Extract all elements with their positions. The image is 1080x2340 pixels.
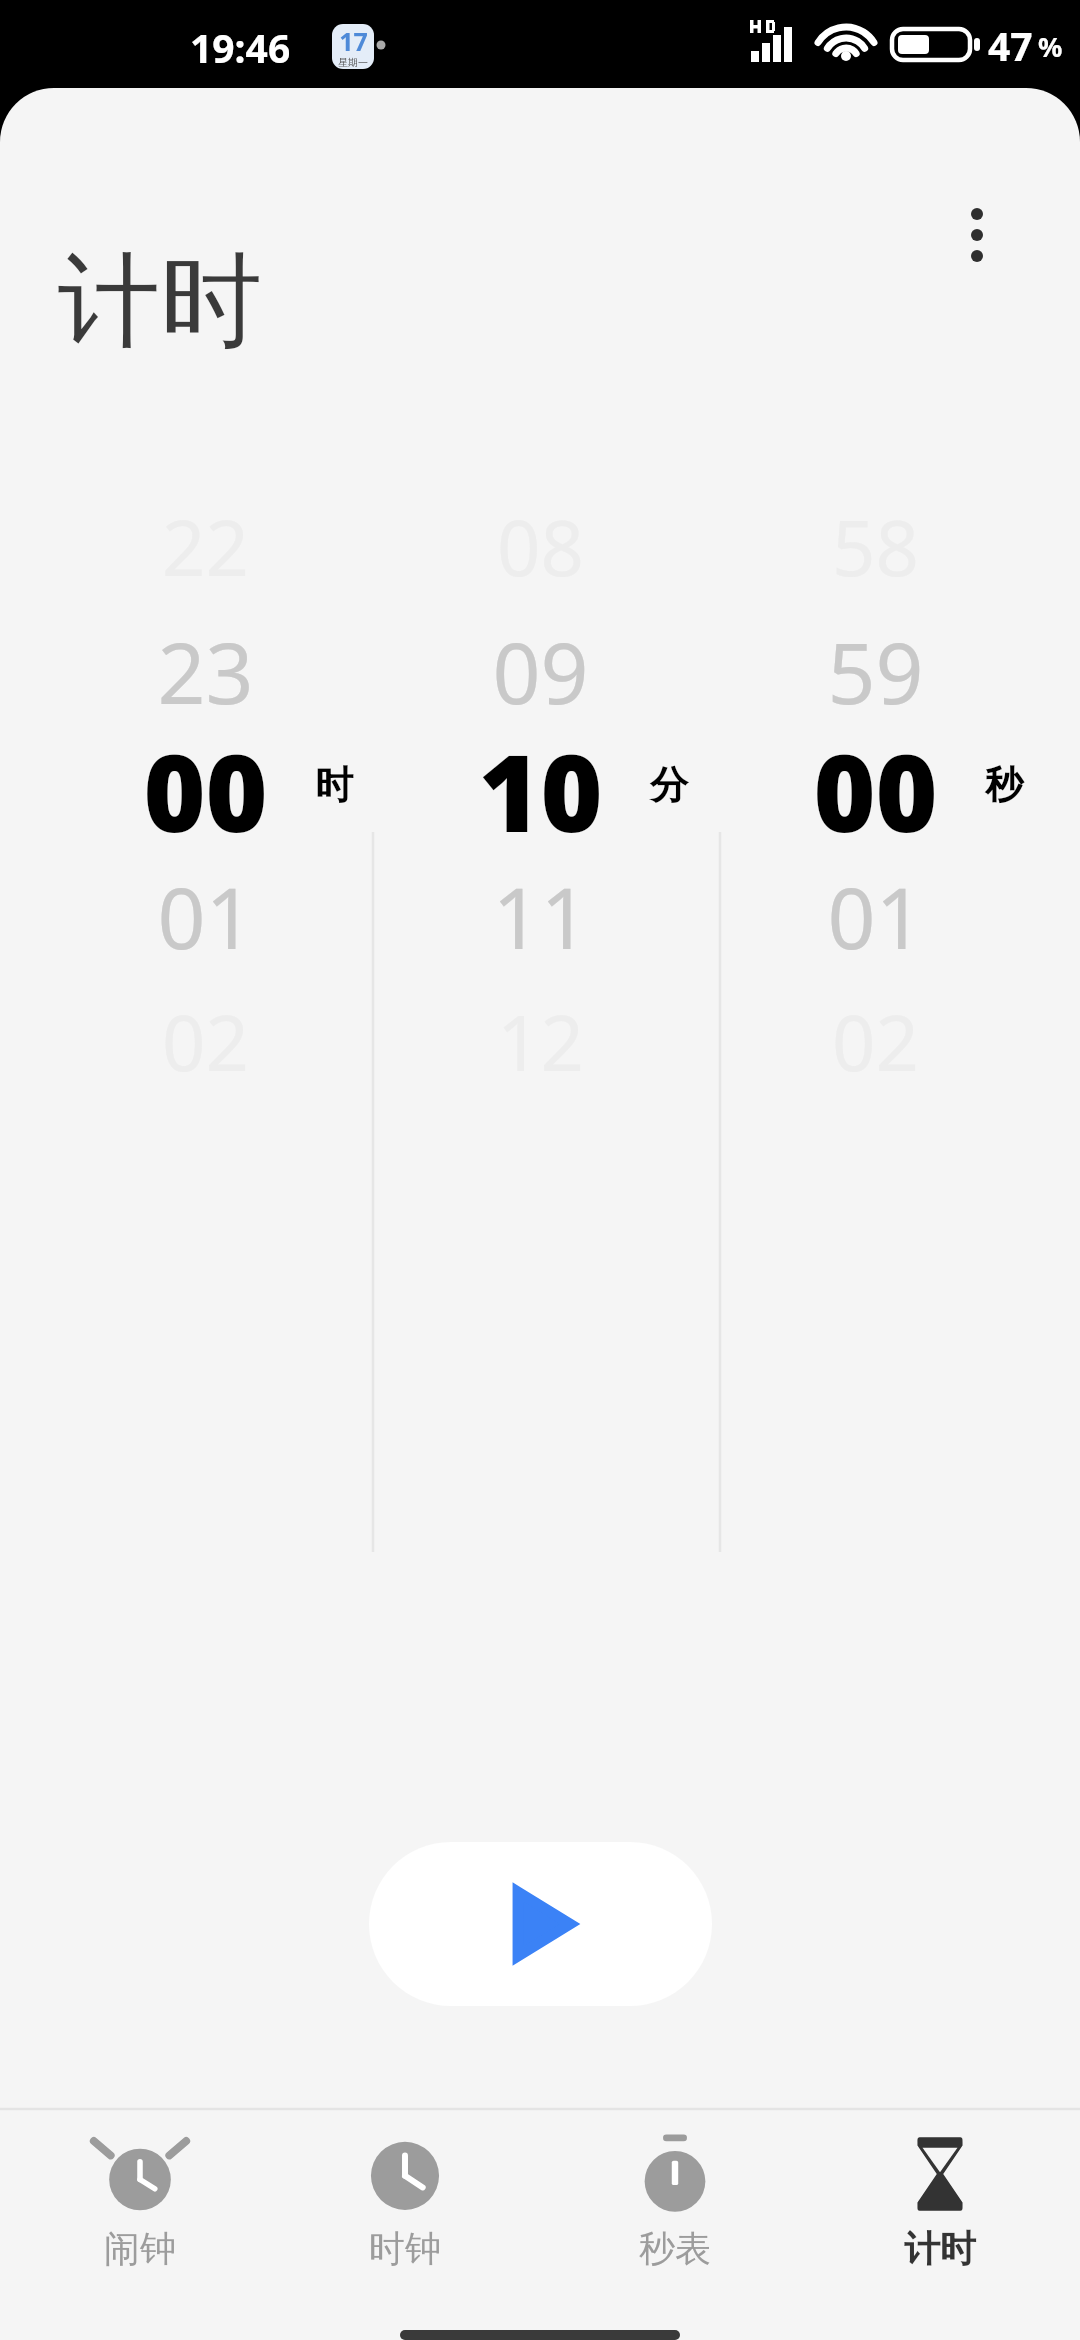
staticText: 11 bbox=[492, 859, 589, 973]
staticText: 星期一 bbox=[338, 56, 368, 69]
staticText: 01 bbox=[827, 859, 924, 973]
staticText: 08 bbox=[497, 495, 584, 599]
staticText: 00 bbox=[143, 719, 268, 863]
button[interactable]: 10 bbox=[370, 711, 710, 871]
staticText: 计时 bbox=[58, 238, 262, 366]
button[interactable]: 时钟 bbox=[270, 2108, 540, 2298]
button[interactable]: 闹钟 bbox=[5, 2108, 275, 2298]
staticText: 01 bbox=[157, 859, 254, 973]
button[interactable]: Start timer bbox=[369, 1842, 712, 2006]
button[interactable]: 09 bbox=[370, 591, 710, 751]
button[interactable]: 01 bbox=[35, 836, 375, 996]
button[interactable]: 59 bbox=[705, 591, 1045, 751]
staticText: 时 bbox=[315, 761, 353, 809]
button[interactable]: 11 bbox=[370, 836, 710, 996]
staticText: 秒 bbox=[985, 761, 1023, 809]
staticText: 秒表 bbox=[639, 2226, 711, 2271]
staticText: 时钟 bbox=[369, 2226, 441, 2271]
staticText: % bbox=[1038, 28, 1063, 65]
staticText: 59 bbox=[827, 614, 924, 728]
button[interactable]: 00 bbox=[705, 711, 1045, 871]
staticText: 58 bbox=[832, 495, 919, 599]
staticText: 分 bbox=[650, 761, 688, 809]
staticText: 47 bbox=[988, 19, 1033, 72]
staticText: 10 bbox=[478, 719, 603, 863]
button[interactable]: 计时 bbox=[805, 2108, 1075, 2298]
button[interactable]: 01 bbox=[705, 836, 1045, 996]
staticText: 17 bbox=[339, 24, 368, 58]
staticText: 09 bbox=[492, 614, 589, 728]
staticText: 计时 bbox=[904, 2226, 976, 2271]
button[interactable]: More options bbox=[936, 194, 1018, 276]
button[interactable]: 秒表 bbox=[540, 2108, 810, 2298]
button[interactable]: 23 bbox=[35, 591, 375, 751]
button[interactable]: 00 bbox=[35, 711, 375, 871]
staticText: 闹钟 bbox=[104, 2226, 176, 2271]
staticText: 00 bbox=[813, 719, 938, 863]
staticText: 19:46 bbox=[190, 21, 291, 74]
staticText: 23 bbox=[157, 614, 254, 728]
